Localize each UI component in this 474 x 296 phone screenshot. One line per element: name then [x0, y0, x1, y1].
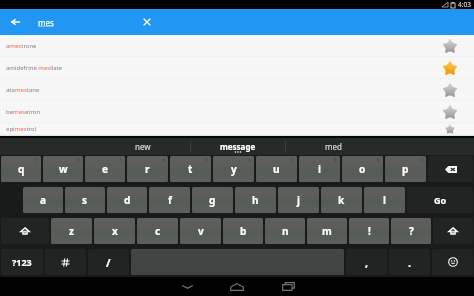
button[interactable]: r: [127, 156, 168, 182]
staticText: ,: [365, 255, 369, 270]
staticText: d: [124, 193, 131, 207]
staticText: r: [145, 162, 150, 176]
staticText: k: [338, 193, 345, 207]
button[interactable]: .: [389, 249, 430, 275]
button[interactable]: y: [213, 156, 254, 182]
button[interactable]: m: [307, 218, 347, 244]
staticText: 6: [248, 157, 251, 164]
button[interactable]: Recents: [263, 277, 313, 296]
staticText: g: [209, 193, 216, 207]
staticText: 8: [334, 157, 337, 164]
button[interactable]: p: [385, 156, 426, 182]
staticText: /: [106, 255, 111, 270]
staticText: t: [188, 162, 193, 176]
button[interactable]: f: [149, 187, 190, 213]
staticText: h: [252, 193, 259, 207]
button[interactable]: Favourite: [437, 35, 463, 57]
button[interactable]: j: [278, 187, 319, 213]
button[interactable]: med: [286, 138, 380, 155]
staticText: m: [322, 224, 332, 238]
staticText: 4: [162, 157, 165, 164]
button[interactable]: v: [180, 218, 221, 244]
staticText: Go: [434, 194, 447, 206]
staticText: p: [402, 162, 409, 176]
button[interactable]: shift: [1, 218, 49, 244]
button[interactable]: Home: [212, 277, 262, 296]
button[interactable]: o: [342, 156, 383, 182]
staticText: !: [368, 224, 371, 238]
staticText: b: [240, 224, 247, 238]
staticText: e: [102, 162, 108, 176]
button[interactable]: t: [170, 156, 211, 182]
button[interactable]: z: [51, 218, 92, 244]
button[interactable]: emoji: [432, 249, 473, 275]
button[interactable]: new: [95, 138, 190, 155]
staticText: amidefrine mesilate: [6, 64, 63, 72]
staticText: bemesetron: [6, 108, 41, 116]
button[interactable]: !: [349, 218, 389, 244]
button[interactable]: /: [88, 249, 129, 275]
staticText: i: [318, 162, 321, 176]
staticText: s: [82, 193, 88, 207]
button[interactable]: e: [85, 156, 125, 182]
staticText: f: [168, 193, 172, 207]
staticText: l: [383, 193, 386, 207]
button[interactable]: epimestrol: [0, 123, 474, 135]
staticText: atamestane: [6, 86, 40, 94]
staticText: message: [220, 141, 256, 152]
button[interactable]: message: [191, 138, 285, 155]
staticText: amestrone: [6, 42, 37, 50]
button[interactable]: amidefrine mesilate: [0, 57, 474, 79]
button[interactable]: h: [235, 187, 276, 213]
button[interactable]: Favourite: [437, 79, 463, 101]
staticText: q: [18, 162, 25, 176]
button[interactable]: Favourite: [437, 123, 463, 135]
button[interactable]: g: [192, 187, 233, 213]
staticText: z: [69, 224, 74, 238]
button[interactable]: w: [43, 156, 83, 182]
button[interactable]: a: [23, 187, 63, 213]
staticText: x: [112, 224, 118, 238]
button[interactable]: x: [94, 218, 135, 244]
button[interactable]: Hide keyboard: [162, 277, 212, 296]
button[interactable]: ?: [391, 218, 431, 244]
button[interactable]: ,: [346, 249, 387, 275]
button[interactable]: c: [137, 218, 178, 244]
staticText: 2: [77, 157, 80, 164]
button[interactable]: Clear search: [134, 9, 160, 35]
button[interactable]: l: [364, 187, 405, 213]
button[interactable]: s: [65, 187, 105, 213]
staticText: u: [273, 162, 280, 176]
button[interactable]: Favourite: [437, 57, 463, 79]
staticText: c: [155, 224, 161, 238]
staticText: 4:03: [458, 0, 471, 9]
button[interactable]: bemesetron: [0, 101, 474, 123]
staticText: v: [198, 224, 204, 238]
button[interactable]: q: [1, 156, 41, 182]
staticText: 3: [119, 157, 122, 164]
button[interactable]: globe: [45, 249, 86, 275]
button[interactable]: amestrone: [0, 35, 474, 57]
staticText: y: [231, 162, 237, 176]
button[interactable]: Back: [0, 9, 30, 35]
button[interactable]: bksp: [428, 156, 473, 182]
button[interactable]: b: [223, 218, 263, 244]
button[interactable]: shift: [433, 218, 473, 244]
button[interactable]: d: [107, 187, 147, 213]
button[interactable]: k: [321, 187, 362, 213]
button[interactable]: go: [407, 187, 473, 213]
staticText: 5: [205, 157, 208, 164]
staticText: epimestrol: [6, 125, 37, 133]
button[interactable]: i: [299, 156, 340, 182]
button[interactable]: ?123: [1, 249, 43, 275]
button[interactable]: Favourite: [437, 101, 463, 123]
button[interactable]: atamestane: [0, 79, 474, 101]
button[interactable]: u: [256, 156, 297, 182]
button[interactable]: n: [265, 218, 305, 244]
staticText: new: [135, 141, 151, 152]
staticText: j: [297, 193, 300, 207]
staticText: a: [40, 193, 46, 207]
